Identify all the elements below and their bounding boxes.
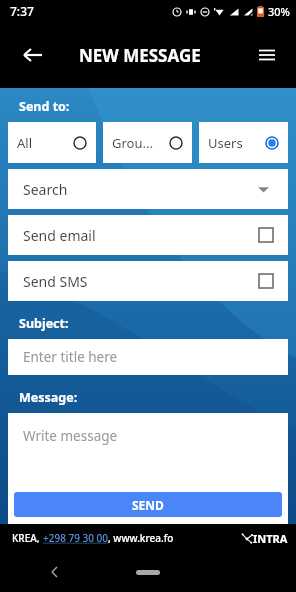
staticText: SEND xyxy=(132,497,164,513)
button[interactable]: Back xyxy=(42,559,68,585)
staticText: Enter title here xyxy=(23,348,118,366)
staticText: Search xyxy=(23,180,68,199)
staticText: Send email xyxy=(23,226,96,245)
button[interactable]: Grou... xyxy=(103,122,192,163)
staticText: 30% xyxy=(268,4,290,19)
button[interactable]: +298 79 30 00 xyxy=(43,531,108,545)
button[interactable]: SEND xyxy=(14,492,282,517)
button[interactable]: Open dropdown xyxy=(252,178,274,200)
staticText: Send to: xyxy=(19,98,70,115)
button[interactable]: Menu xyxy=(248,36,286,74)
staticText: 7:37 xyxy=(10,3,34,19)
staticText: Grou... xyxy=(112,134,153,152)
button[interactable]: Home xyxy=(136,570,160,575)
button[interactable]: Search xyxy=(8,169,288,209)
button[interactable]: Enter title here xyxy=(8,339,288,375)
staticText: , www.krea.fo xyxy=(108,531,174,545)
staticText: Write message xyxy=(23,427,118,445)
staticText: All xyxy=(17,134,33,152)
button[interactable]: Back xyxy=(12,35,52,75)
button[interactable]: Send SMS xyxy=(8,261,288,301)
staticText: Message: xyxy=(19,389,78,406)
staticText: Subject: xyxy=(19,315,69,332)
staticText: NEW MESSAGE xyxy=(79,44,201,67)
staticText: Send SMS xyxy=(23,272,88,291)
button[interactable]: Users xyxy=(199,122,288,163)
button[interactable]: All xyxy=(8,122,96,163)
staticText: Users xyxy=(208,134,243,152)
staticText: KREA, xyxy=(12,531,43,545)
button[interactable]: Send email xyxy=(8,215,288,255)
staticText: INTRA xyxy=(253,531,288,546)
